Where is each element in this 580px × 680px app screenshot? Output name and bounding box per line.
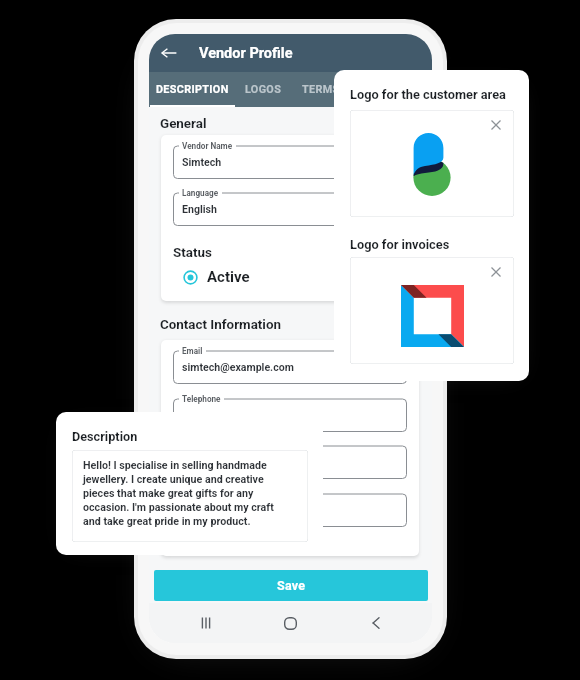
staticText: Email <box>182 346 203 356</box>
button[interactable] <box>173 441 407 479</box>
staticText: TERMS <box>302 83 340 96</box>
button[interactable]: Remove logo <box>489 265 503 279</box>
staticText: English <box>182 203 217 215</box>
button[interactable]: Back <box>333 603 418 643</box>
button[interactable]: Hello! I specialise in selling handmade … <box>72 450 308 542</box>
button[interactable]: Language <box>173 188 407 226</box>
button[interactable]: Recent apps <box>163 603 248 643</box>
button[interactable]: Save <box>154 570 428 601</box>
staticText: Save <box>277 578 306 593</box>
staticText: Vendor Profile <box>199 45 293 62</box>
button[interactable]: Home <box>248 603 333 643</box>
button[interactable]: Back <box>155 39 183 67</box>
button[interactable]: TERMS <box>292 72 349 107</box>
staticText: General <box>160 116 207 132</box>
staticText: LOGOS <box>245 83 282 96</box>
staticText: simtech@example.com <box>182 361 294 373</box>
staticText: Contact Information <box>160 317 281 333</box>
staticText: Description <box>72 429 138 444</box>
button[interactable]: Remove logo <box>489 118 503 132</box>
button[interactable] <box>173 489 407 527</box>
staticText: Active <box>207 268 250 286</box>
staticText: Logo for invoices <box>350 237 450 252</box>
staticText: Language <box>182 188 219 198</box>
staticText: Hello! I specialise in selling handmade … <box>83 459 283 528</box>
button[interactable]: Active <box>183 268 250 286</box>
staticText: Vendor Name <box>182 141 233 151</box>
button[interactable]: Telephone <box>173 394 407 432</box>
button[interactable]: DESCRIPTION <box>149 72 235 107</box>
button[interactable]: LOGOS <box>235 72 292 107</box>
staticText: DESCRIPTION <box>156 83 229 96</box>
button[interactable]: Vendor Name <box>173 141 407 179</box>
staticText: Logo for the customer area <box>350 87 506 102</box>
button[interactable]: Email <box>173 346 407 384</box>
staticText: Status <box>173 245 212 261</box>
staticText: Simtech <box>182 156 222 168</box>
staticText: Telephone <box>182 394 221 404</box>
